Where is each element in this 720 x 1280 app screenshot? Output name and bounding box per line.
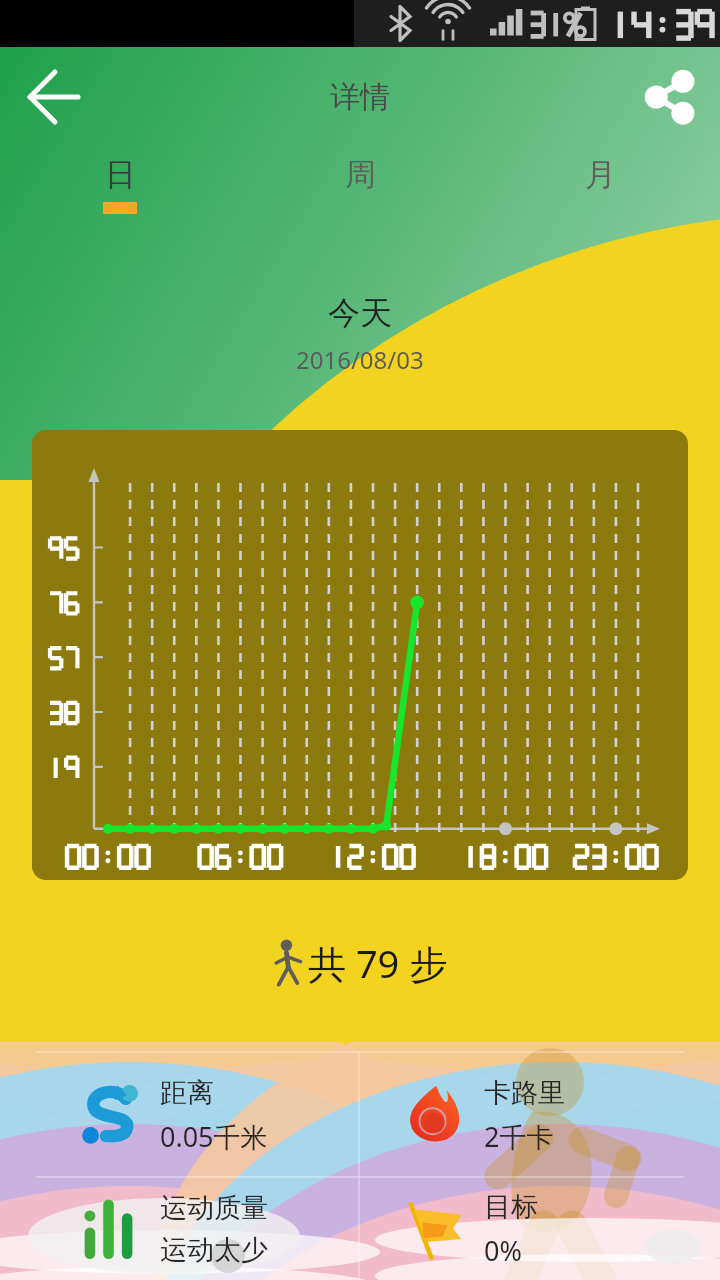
staticText: 运动太少 [160,1233,268,1267]
button[interactable]: Share [640,68,698,126]
button[interactable]: 日 [0,155,240,240]
button[interactable]: 目标 [360,1178,684,1280]
button[interactable] [32,430,688,880]
staticText: 月 [585,155,616,194]
staticText: 0.05千米 [160,1118,268,1155]
button[interactable]: 卡路里 [360,1053,684,1177]
staticText: 日 [105,155,136,194]
staticText: 目标 [484,1190,538,1224]
button[interactable]: 月 [480,155,720,240]
staticText: 详情 [330,78,390,116]
button[interactable]: 距离 [36,1053,359,1177]
staticText: 距离 [160,1076,214,1110]
button[interactable]: 运动质量 [36,1178,359,1280]
staticText: 0% [484,1232,522,1269]
staticText: 2千卡 [484,1118,554,1155]
button[interactable]: Back [22,66,84,128]
staticText: 2016/08/03 [296,343,424,376]
staticText: 周 [345,155,376,194]
staticText: 今天 [328,293,392,333]
button[interactable]: 周 [240,155,480,240]
staticText: 运动质量 [160,1191,268,1225]
staticText: 共 79 步 [308,937,448,989]
staticText: 卡路里 [484,1076,565,1110]
